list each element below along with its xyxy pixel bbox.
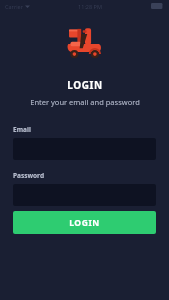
staticText: LOGIN [67, 78, 103, 92]
staticText: 11:28 PM [78, 3, 102, 10]
staticText: Email [13, 125, 31, 134]
staticText: Enter your email and password [30, 97, 140, 107]
staticText: Password [13, 171, 44, 180]
staticText: Carrier [5, 3, 23, 10]
other: Scooter logo [66, 26, 104, 62]
staticText: LOGIN [69, 217, 100, 229]
button[interactable]: LOGIN [13, 211, 156, 234]
